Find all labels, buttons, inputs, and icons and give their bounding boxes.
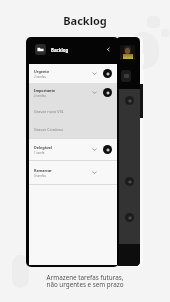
button[interactable]: Voltar <box>104 45 113 54</box>
button[interactable]: Importante <box>29 83 117 102</box>
staticText: Gravar novo VSL <box>34 109 64 114</box>
button[interactable]: Delegável <box>29 139 117 160</box>
button[interactable]: Adicionar tarefa <box>103 69 112 78</box>
button[interactable]: Gravar Criativos <box>29 120 117 138</box>
button[interactable]: Pasta Backlog <box>35 44 46 55</box>
staticText: 1 tarefa <box>34 151 45 155</box>
button[interactable]: Adicionar <box>125 96 134 105</box>
button[interactable]: Urgente <box>29 64 117 83</box>
staticText: Backlog <box>63 13 107 28</box>
staticText: Urgente <box>34 69 50 74</box>
staticText: Remarcar <box>34 168 52 173</box>
button[interactable]: Adicionar tarefa <box>103 145 112 154</box>
staticText: 2 tarefas <box>34 94 46 98</box>
staticText: Backlog <box>51 47 69 53</box>
button[interactable]: Gravar novo VSL <box>29 102 117 120</box>
staticText: Importante <box>34 88 56 93</box>
button[interactable]: Adicionar tarefa <box>103 88 112 97</box>
staticText: Delegável <box>34 145 53 150</box>
staticText: 2 tarefas <box>34 75 46 79</box>
button[interactable]: Adicionar <box>125 177 134 186</box>
button[interactable]: Remarcar <box>29 161 117 184</box>
staticText: Armazene tarefas futuras, não urgentes e… <box>46 273 124 289</box>
staticText: 0 tarefas <box>34 174 46 178</box>
button[interactable]: Adicionar <box>125 213 134 222</box>
staticText: Gravar Criativos <box>34 127 64 132</box>
button[interactable]: Abrir <box>121 70 131 82</box>
